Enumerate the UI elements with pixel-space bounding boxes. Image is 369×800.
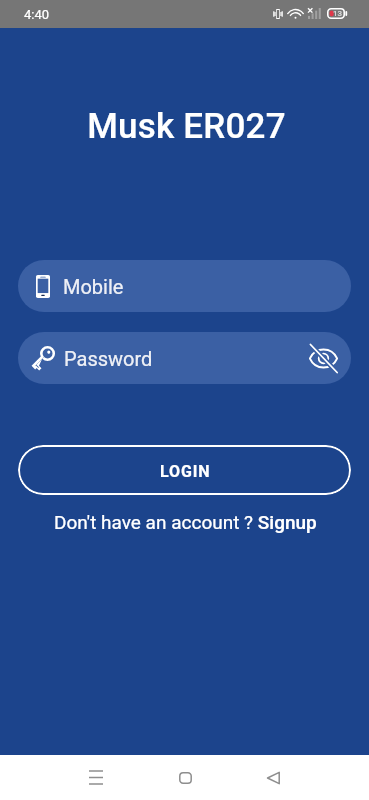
button[interactable]: Mobile bbox=[18, 260, 351, 312]
staticText: LOGIN bbox=[160, 462, 211, 481]
button[interactable]: Password bbox=[18, 332, 351, 384]
staticText: Mobile bbox=[63, 275, 124, 298]
staticText: 4:40 bbox=[24, 7, 50, 22]
button[interactable]: Show password bbox=[308, 343, 338, 373]
staticText: Musk ER027 bbox=[2, 106, 369, 147]
button[interactable]: Back bbox=[250, 755, 296, 800]
button[interactable]: LOGIN bbox=[18, 445, 351, 495]
button[interactable]: Recent apps bbox=[73, 755, 119, 800]
button[interactable]: Don't have an account ? Signup bbox=[54, 511, 317, 533]
staticText: 13 bbox=[333, 9, 343, 18]
staticText: Password bbox=[64, 347, 308, 370]
button[interactable]: Home bbox=[162, 755, 208, 800]
